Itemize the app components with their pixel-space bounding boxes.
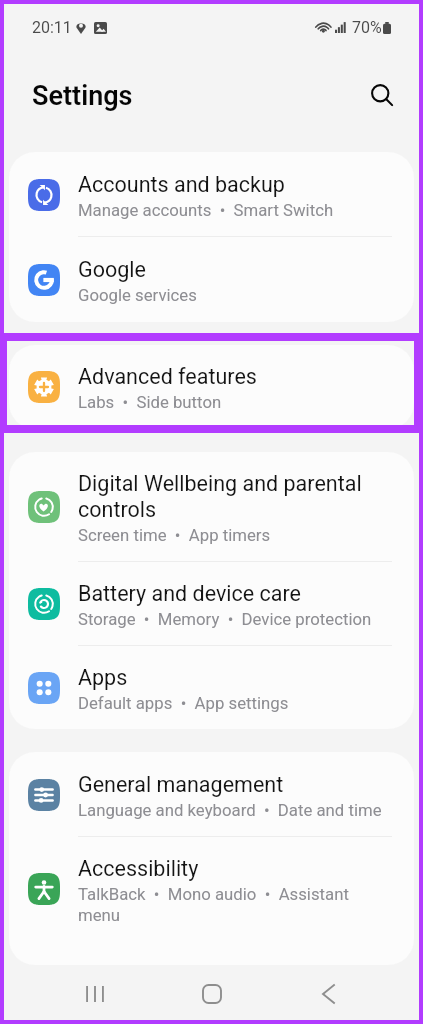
button[interactable]: Back [270, 965, 387, 1024]
staticText: Labs • Side button [78, 392, 222, 412]
staticText: 70% [352, 18, 382, 37]
staticText: Default apps • App settings [78, 693, 289, 713]
button[interactable]: Accounts and backup [9, 152, 414, 237]
staticText: Accessibility [78, 856, 199, 881]
button[interactable]: Advanced features [9, 345, 414, 429]
staticText: General management [78, 772, 284, 797]
staticText: TalkBack • Mono audio • Assistant menu [78, 884, 388, 925]
button[interactable]: Apps [9, 646, 414, 729]
button[interactable]: General management [9, 752, 414, 837]
button[interactable]: Accessibility [9, 837, 414, 941]
button[interactable]: Home [153, 965, 270, 1024]
staticText: Apps [78, 665, 128, 690]
staticText: Digital Wellbeing and parental controls [78, 471, 388, 522]
staticText: Manage accounts • Smart Switch [78, 200, 334, 220]
staticText: Language and keyboard • Date and time [78, 800, 382, 820]
button[interactable]: Recents [36, 965, 153, 1024]
button[interactable]: Google [9, 237, 414, 322]
staticText: Settings [32, 80, 133, 112]
staticText: Google [78, 257, 146, 282]
button[interactable]: Battery and device care [9, 562, 414, 646]
staticText: Google services [78, 285, 197, 305]
staticText: Battery and device care [78, 581, 302, 606]
staticText: Screen time • App timers [78, 525, 271, 545]
staticText: Accounts and backup [78, 172, 285, 197]
button[interactable]: Digital Wellbeing and parental controls [9, 452, 414, 562]
staticText: Storage • Memory • Device protection [78, 609, 372, 629]
staticText: 20:11 [32, 18, 72, 37]
button[interactable]: Search [360, 73, 404, 117]
staticText: Advanced features [78, 364, 257, 389]
